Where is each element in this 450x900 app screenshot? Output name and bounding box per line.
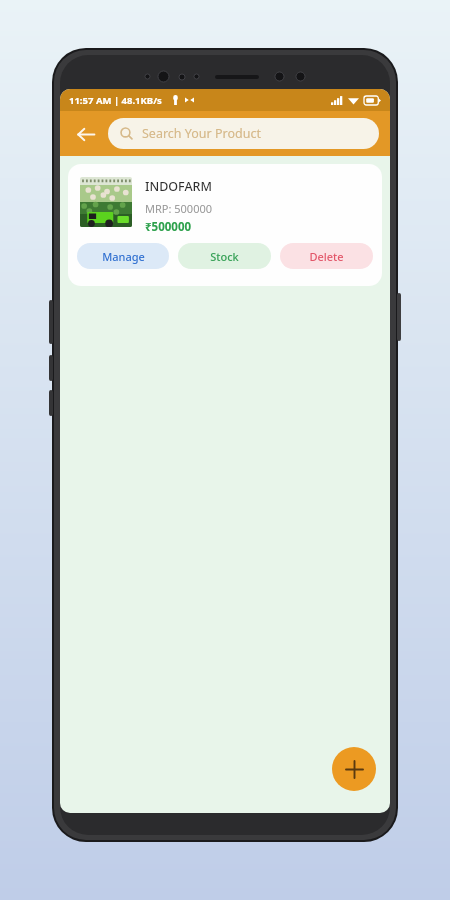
button[interactable]: INDOFARM [68,164,382,286]
staticText: ₹500000 [145,219,192,235]
staticText: 11:57 AM | 48.1KB/s [69,94,162,107]
button[interactable]: Add product [332,747,376,791]
staticText: MRP: 500000 [145,201,213,216]
button[interactable]: Back [66,115,104,153]
button[interactable]: Stock [178,243,271,269]
button[interactable]: Search Your Product [108,118,379,149]
staticText: Manage [102,249,145,264]
staticText: Delete [309,249,344,264]
button[interactable]: Manage [77,243,169,269]
button[interactable]: Delete [280,243,373,269]
staticText: Stock [210,249,239,264]
staticText: INDOFARM [145,178,212,195]
staticText: Search Your Product [142,125,261,142]
